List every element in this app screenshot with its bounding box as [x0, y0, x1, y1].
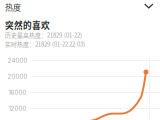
staticText: 实时热度：21829 (01-22 22:03) [5, 40, 85, 48]
staticText: 20000 [7, 73, 27, 80]
staticText: 突然的喜欢 [5, 19, 50, 31]
staticText: 热度 [5, 1, 21, 13]
staticText: 24000 [7, 57, 27, 64]
button[interactable]: Collapse [140, 0, 158, 14]
staticText: 历史最高热度：21829 (01-22) [5, 31, 82, 39]
staticText: 12000 [8, 105, 26, 112]
staticText: 16000 [8, 89, 26, 96]
